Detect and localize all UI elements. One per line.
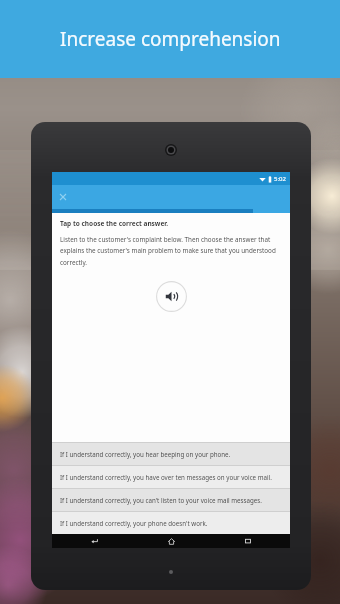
- staticText: If I understand correctly, you can't lis…: [60, 496, 262, 504]
- button[interactable]: If I understand correctly, you can't lis…: [52, 489, 290, 511]
- button[interactable]: Back: [88, 535, 100, 547]
- button[interactable]: Recent apps: [242, 535, 254, 547]
- staticText: Tap to choose the correct answer.: [60, 219, 169, 228]
- button[interactable]: If I understand correctly, you have over…: [52, 466, 290, 488]
- button[interactable]: Play audio: [156, 281, 187, 312]
- staticText: Increase comprehension: [60, 26, 281, 52]
- staticText: If I understand correctly, you hear beep…: [60, 450, 231, 458]
- button[interactable]: If I understand correctly, your phone do…: [52, 512, 290, 534]
- button[interactable]: Close: [56, 190, 70, 204]
- staticText: 5:02: [274, 175, 286, 183]
- button[interactable]: If I understand correctly, you hear beep…: [52, 443, 290, 465]
- staticText: If I understand correctly, you have over…: [60, 473, 272, 481]
- staticText: Listen to the customer's complaint below…: [60, 235, 280, 267]
- staticText: If I understand correctly, your phone do…: [60, 519, 208, 527]
- button[interactable]: Home: [165, 535, 177, 547]
